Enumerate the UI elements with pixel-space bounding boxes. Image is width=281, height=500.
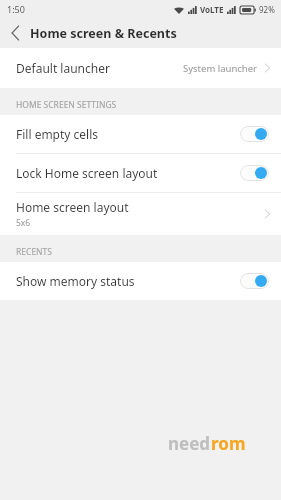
button[interactable]: Back	[0, 18, 30, 48]
button[interactable]: Show memory status	[0, 262, 281, 300]
staticText: Show memory status	[16, 273, 135, 289]
staticText: 92%	[259, 4, 275, 15]
button[interactable]: Toggle	[240, 126, 269, 142]
button[interactable]: Default launcher	[0, 48, 281, 88]
button[interactable]: Lock Home screen layout	[0, 154, 281, 192]
staticText: VoLTE	[200, 4, 224, 15]
staticText: Home screen & Recents	[30, 25, 177, 42]
button[interactable]: Toggle	[240, 165, 269, 181]
button[interactable]: Toggle	[240, 273, 269, 289]
staticText: 5x6	[16, 217, 31, 229]
staticText: System launcher	[183, 62, 257, 75]
staticText: HOME SCREEN SETTINGS	[16, 99, 117, 111]
staticText: rom	[211, 432, 246, 455]
staticText: Default launcher	[16, 60, 110, 76]
staticText: Lock Home screen layout	[16, 165, 158, 181]
button[interactable]: Fill empty cells	[0, 115, 281, 153]
staticText: Fill empty cells	[16, 126, 99, 142]
staticText: 1:50	[7, 3, 25, 15]
staticText: need	[168, 432, 211, 455]
button[interactable]: Home screen layout	[0, 193, 281, 235]
staticText: Home screen layout	[16, 199, 129, 215]
staticText: RECENTS	[16, 246, 52, 258]
